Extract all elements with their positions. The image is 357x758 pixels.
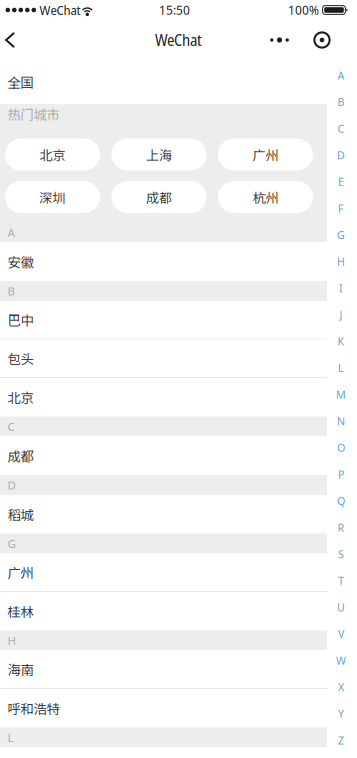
button[interactable]: R — [327, 514, 355, 541]
button[interactable]: A — [327, 62, 355, 89]
staticText: 15:50 — [159, 2, 190, 18]
button[interactable]: V — [327, 621, 355, 647]
staticText: P — [338, 467, 344, 481]
button[interactable]: 杭州 — [218, 181, 313, 213]
button[interactable]: Q — [327, 488, 355, 514]
button[interactable]: K — [327, 328, 355, 355]
button[interactable]: 桂林 — [0, 592, 327, 630]
staticText: C — [7, 419, 14, 434]
staticText: G — [337, 228, 345, 242]
button[interactable]: 稻城 — [0, 495, 327, 533]
staticText: S — [338, 547, 344, 561]
button[interactable]: J — [327, 301, 355, 328]
button[interactable]: 成都 — [111, 181, 206, 213]
staticText: 热门城市 — [7, 104, 59, 124]
staticText: 杭州 — [252, 187, 278, 206]
button[interactable]: W — [327, 647, 355, 674]
staticText: H — [337, 254, 345, 269]
button[interactable]: 呼和浩特 — [0, 689, 327, 727]
button[interactable]: U — [327, 594, 355, 621]
staticText: D — [7, 477, 15, 493]
staticText: W — [336, 653, 346, 668]
staticText: I — [339, 281, 343, 295]
button[interactable]: 全国 — [0, 60, 327, 104]
staticText: F — [338, 201, 344, 215]
staticText: O — [337, 440, 345, 455]
staticText: 深圳 — [39, 187, 65, 206]
button[interactable]: F — [327, 195, 355, 222]
button[interactable]: 巴中 — [0, 301, 327, 339]
staticText: 成都 — [7, 446, 33, 465]
button[interactable]: 安徽 — [0, 242, 327, 281]
button[interactable]: 北京 — [5, 138, 100, 170]
staticText: K — [337, 334, 344, 348]
staticText: 广州 — [252, 145, 278, 164]
staticText: Q — [337, 494, 345, 508]
staticText: L — [7, 730, 13, 745]
staticText: T — [338, 573, 344, 588]
staticText: 上海 — [146, 145, 172, 164]
staticText: U — [337, 600, 345, 614]
button[interactable]: O — [327, 434, 355, 461]
button[interactable]: P — [327, 461, 355, 488]
button[interactable]: Z — [327, 727, 355, 754]
button[interactable]: 北京 — [0, 378, 327, 416]
button[interactable]: E — [327, 168, 355, 195]
staticText: H — [7, 633, 15, 648]
staticText: 北京 — [7, 388, 33, 407]
button[interactable]: Close — [306, 20, 338, 60]
staticText: 100% — [288, 2, 319, 18]
staticText: Z — [338, 733, 344, 747]
button[interactable]: D — [327, 142, 355, 168]
button[interactable]: I — [327, 275, 355, 301]
button[interactable]: 广州 — [0, 553, 327, 592]
staticText: R — [337, 520, 344, 535]
staticText: 海南 — [7, 660, 33, 679]
staticText: 呼和浩特 — [7, 699, 59, 718]
button[interactable]: 上海 — [111, 138, 206, 170]
staticText: 全国 — [7, 72, 33, 92]
staticText: 巴中 — [7, 310, 33, 329]
staticText: WeChat — [40, 1, 81, 19]
staticText: 成都 — [146, 187, 172, 206]
button[interactable]: G — [327, 222, 355, 248]
button[interactable]: N — [327, 408, 355, 434]
staticText: WeChat — [155, 30, 202, 50]
button[interactable]: 深圳 — [5, 181, 100, 213]
button[interactable]: B — [327, 89, 355, 115]
button[interactable]: H — [327, 248, 355, 275]
staticText: Y — [338, 706, 344, 721]
button[interactable]: L — [327, 355, 355, 381]
staticText: 安徽 — [7, 252, 33, 271]
staticText: A — [7, 225, 14, 240]
staticText: L — [338, 361, 344, 375]
button[interactable]: 海南 — [0, 650, 327, 689]
button[interactable]: X — [327, 674, 355, 700]
button[interactable]: M — [327, 381, 355, 408]
staticText: 北京 — [39, 145, 65, 164]
staticText: 稻城 — [7, 505, 33, 524]
staticText: 包头 — [7, 349, 33, 368]
staticText: D — [337, 148, 345, 162]
staticText: B — [337, 95, 344, 109]
button[interactable]: T — [327, 567, 355, 594]
button[interactable]: S — [327, 541, 355, 567]
staticText: E — [338, 174, 344, 189]
button[interactable]: 包头 — [0, 339, 327, 378]
staticText: B — [7, 283, 14, 299]
staticText: J — [339, 307, 342, 322]
staticText: C — [337, 121, 344, 136]
staticText: G — [7, 536, 15, 551]
button[interactable]: Back — [0, 20, 20, 60]
button[interactable]: 成都 — [0, 436, 327, 475]
button[interactable]: C — [327, 115, 355, 142]
staticText: A — [337, 68, 344, 82]
staticText: N — [337, 414, 345, 428]
button[interactable]: Y — [327, 700, 355, 727]
staticText: 桂林 — [7, 602, 33, 621]
staticText: X — [338, 680, 344, 694]
button[interactable]: 广州 — [218, 138, 313, 170]
button[interactable]: More options — [263, 20, 306, 60]
